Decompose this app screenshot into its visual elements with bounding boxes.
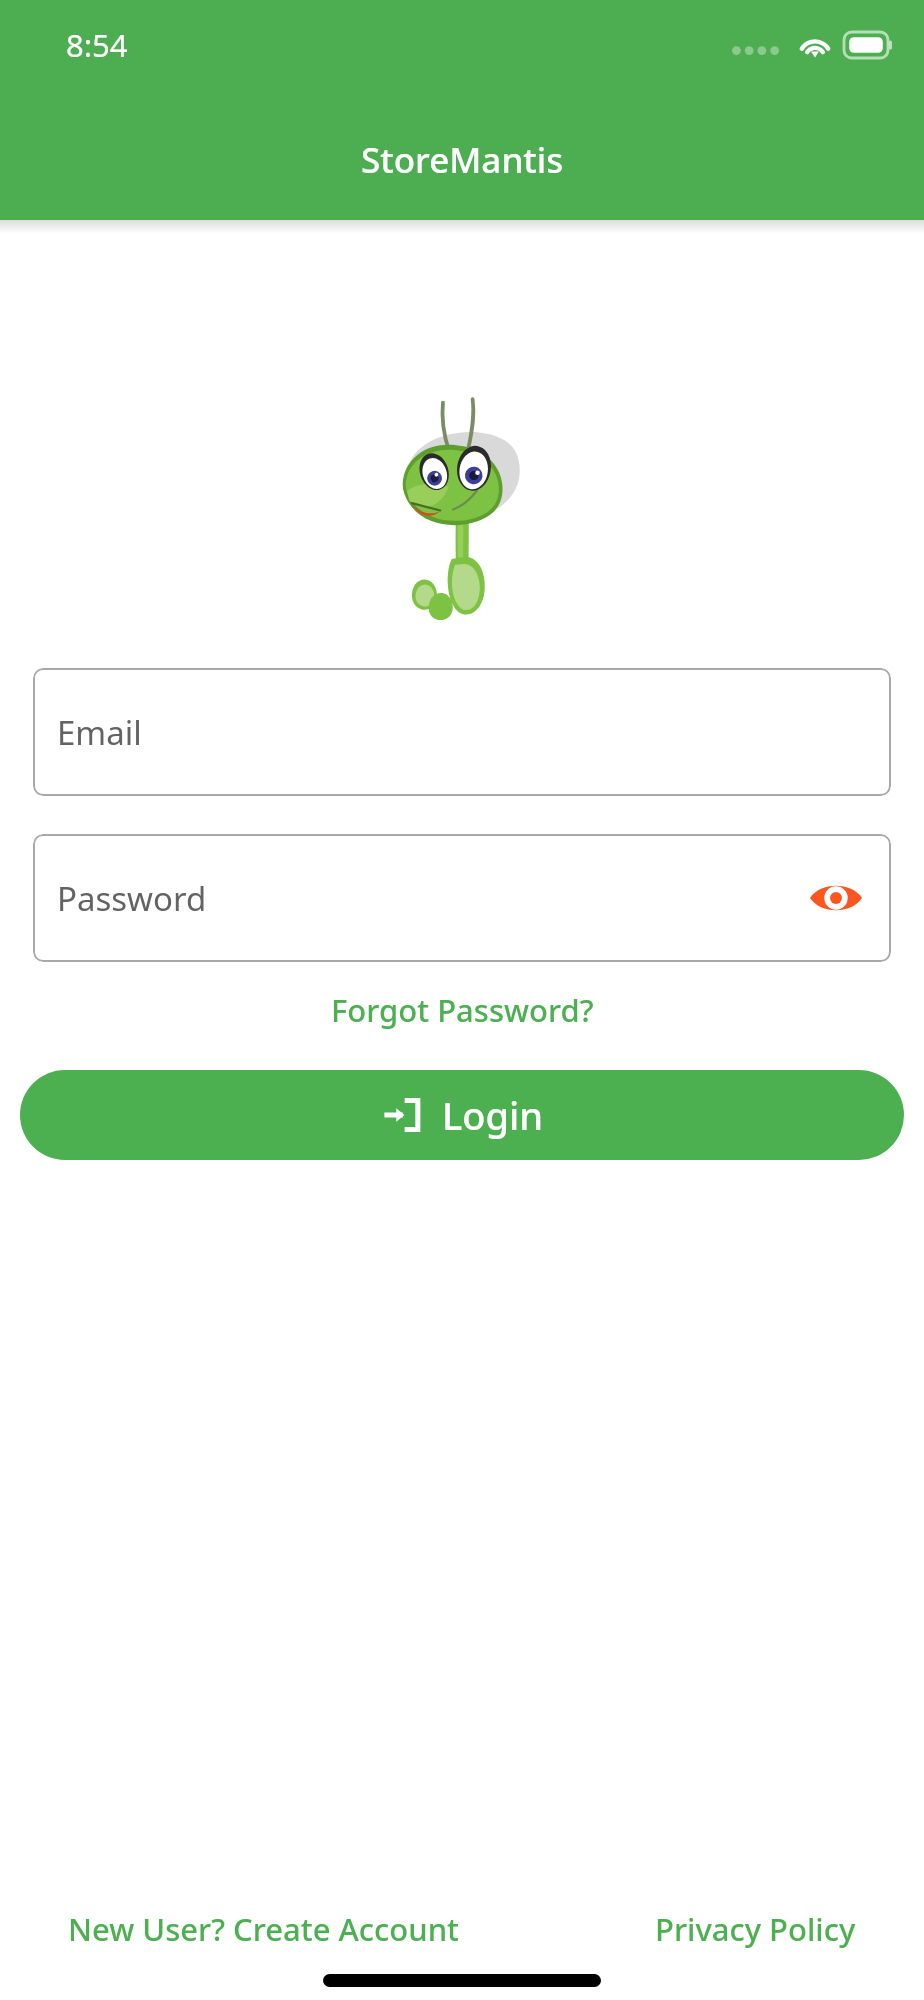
staticText: 8:54 — [66, 24, 128, 66]
button[interactable]: Forgot Password? — [317, 983, 608, 1037]
staticText: Forgot Password? — [331, 989, 594, 1031]
staticText: New User? Create Account — [68, 1908, 459, 1950]
button[interactable]: Show password — [803, 865, 869, 931]
button[interactable]: Password — [33, 834, 891, 962]
staticText: Password — [57, 876, 207, 921]
button[interactable]: Privacy Policy — [647, 1902, 864, 1956]
staticText: Email — [57, 710, 142, 755]
button[interactable]: New User? Create Account — [60, 1902, 467, 1956]
button[interactable]: Email — [33, 668, 891, 796]
staticText: StoreMantis — [361, 136, 564, 184]
staticText: Login — [442, 1089, 544, 1141]
staticText: Privacy Policy — [655, 1908, 856, 1950]
button[interactable]: Login — [20, 1070, 904, 1160]
